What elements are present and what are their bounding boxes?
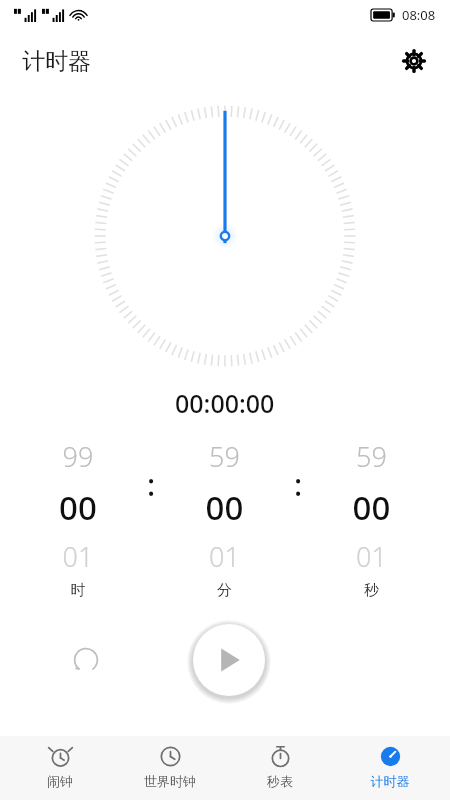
staticText: 01 bbox=[311, 538, 432, 575]
button[interactable]: Start bbox=[193, 624, 265, 696]
staticText: 计时器 bbox=[340, 773, 440, 789]
staticText: 99 bbox=[18, 438, 138, 475]
staticText: 59 bbox=[164, 438, 285, 475]
button[interactable]: 秒表 bbox=[230, 736, 330, 800]
button[interactable]: 闹钟 bbox=[10, 736, 110, 800]
button[interactable]: 世界时钟 bbox=[120, 736, 220, 800]
staticText: 59 bbox=[311, 438, 432, 475]
staticText: : bbox=[147, 464, 156, 505]
staticText: : bbox=[294, 464, 303, 505]
staticText: 分 bbox=[164, 581, 285, 600]
staticText: 08:08 bbox=[402, 6, 436, 24]
button[interactable]: 59 bbox=[311, 438, 432, 600]
staticText: 00:00:00 bbox=[175, 386, 275, 420]
button[interactable]: 59 bbox=[164, 438, 285, 600]
staticText: 闹钟 bbox=[10, 773, 110, 789]
staticText: 00 bbox=[18, 485, 138, 530]
staticText: 00 bbox=[164, 485, 285, 530]
staticText: 秒表 bbox=[230, 773, 330, 789]
button[interactable]: 99 bbox=[18, 438, 138, 600]
staticText: 01 bbox=[18, 538, 138, 575]
staticText: 00 bbox=[311, 485, 432, 530]
button[interactable]: Settings bbox=[392, 39, 436, 83]
button[interactable]: Reset bbox=[62, 636, 110, 684]
staticText: 世界时钟 bbox=[120, 773, 220, 789]
button[interactable]: 计时器 bbox=[340, 736, 440, 800]
staticText: 时 bbox=[18, 581, 138, 600]
staticText: 计时器 bbox=[22, 47, 91, 76]
staticText: 01 bbox=[164, 538, 285, 575]
staticText: 秒 bbox=[311, 581, 432, 600]
